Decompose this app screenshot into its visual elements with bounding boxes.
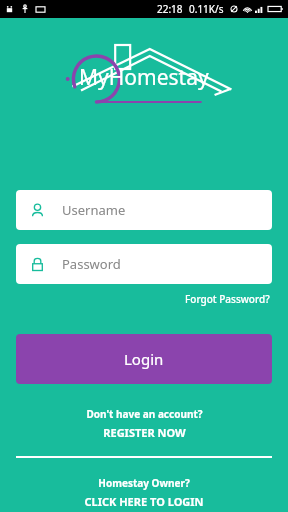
staticText: Password (62, 255, 121, 273)
staticText: 0.11K/s (189, 2, 224, 16)
staticText: REGISTER NOW (103, 425, 186, 440)
button[interactable]: Don't have an account? (0, 407, 288, 440)
staticText: MyHomestay (79, 63, 209, 92)
button[interactable]: Forgot Password? (183, 290, 272, 308)
staticText: Homestay Owner? (98, 476, 190, 490)
button[interactable]: Username (16, 190, 272, 230)
button[interactable]: Homestay Owner? (0, 476, 288, 509)
staticText: CLICK HERE TO LOGIN (84, 494, 204, 509)
button[interactable]: Login (16, 334, 272, 384)
staticText: Forgot Password? (185, 292, 270, 306)
staticText: Login (124, 349, 164, 369)
staticText: 22:18 (157, 2, 183, 16)
button[interactable]: Password (16, 244, 272, 284)
staticText: Don't have an account? (86, 407, 203, 421)
staticText: Username (62, 201, 126, 219)
